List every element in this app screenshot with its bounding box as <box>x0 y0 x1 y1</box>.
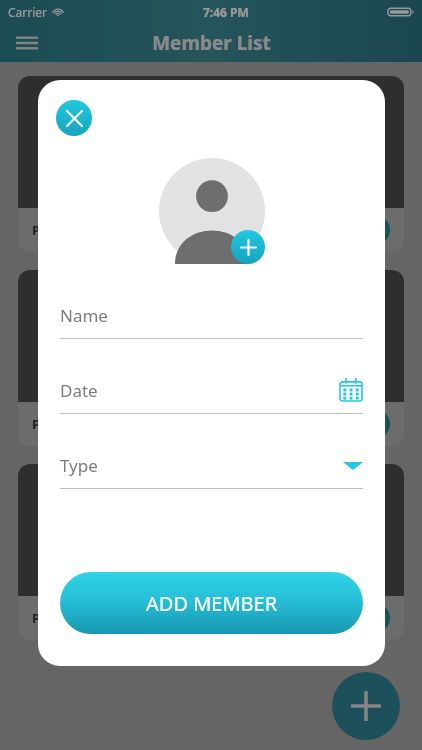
button[interactable]: 3000 <box>314 409 390 439</box>
staticText: 3000 <box>334 413 371 435</box>
staticText: Name <box>60 304 108 327</box>
button[interactable]: 3000 <box>314 603 390 633</box>
button[interactable]: PAID UP TO : <box>18 402 404 446</box>
button[interactable]: PAID UP TO : <box>18 208 404 252</box>
staticText: Date <box>60 379 98 402</box>
button[interactable]: Menu <box>8 24 46 62</box>
button[interactable]: ADD MEMBER <box>60 572 363 634</box>
staticText: 03 Aug, 2019 <box>151 222 225 238</box>
button[interactable]: 3000 <box>314 215 390 245</box>
staticText: 03 Aug, 2019 <box>151 610 225 626</box>
button[interactable]: Add photo <box>231 230 265 264</box>
staticText: PAID UP TO : <box>32 415 113 433</box>
button[interactable] <box>18 464 404 596</box>
staticText: 3000 <box>334 607 371 629</box>
button[interactable] <box>18 76 404 208</box>
staticText: PAID UP TO : <box>32 609 113 627</box>
staticText: Type <box>60 454 98 477</box>
button[interactable]: Close <box>56 100 92 136</box>
button[interactable] <box>18 270 404 402</box>
button[interactable]: Name <box>60 298 363 339</box>
staticText: PAID UP TO : <box>32 221 113 239</box>
staticText: ADD MEMBER <box>146 590 278 617</box>
button[interactable]: Type <box>60 448 363 489</box>
staticText: Member List <box>152 30 271 56</box>
button[interactable]: Date <box>60 373 363 414</box>
staticText: Carrier <box>8 4 48 20</box>
button[interactable]: Add member <box>332 672 400 740</box>
staticText: 7:46 PM <box>203 4 249 20</box>
button[interactable]: PAID UP TO : <box>18 596 404 640</box>
